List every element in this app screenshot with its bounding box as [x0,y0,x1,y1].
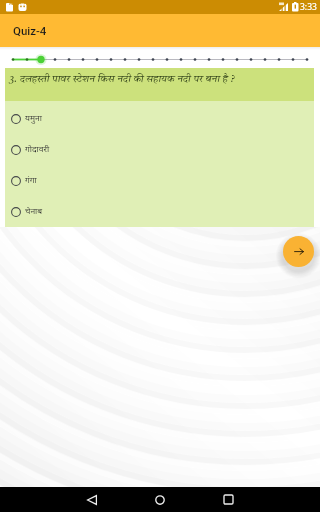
staticText: गोदावरी [25,144,50,155]
button[interactable]: चेनाब [5,196,314,227]
button[interactable]: Back [76,487,108,512]
staticText: 3. दलहस्ती पावर स्टेशन किस नदी की सहायक … [9,74,235,84]
staticText: यमुना [25,113,42,124]
staticText: Quiz-4 [13,24,47,37]
button[interactable]: Next question [283,236,314,267]
button[interactable]: Home [144,487,176,512]
staticText: चेनाब [25,206,43,217]
button[interactable]: गंगा [5,165,314,196]
staticText: 3:33 [300,1,317,13]
staticText: गंगा [25,175,37,186]
button[interactable]: यमुना [5,103,314,134]
button[interactable]: गोदावरी [5,134,314,165]
button[interactable]: Recent apps [212,487,244,512]
